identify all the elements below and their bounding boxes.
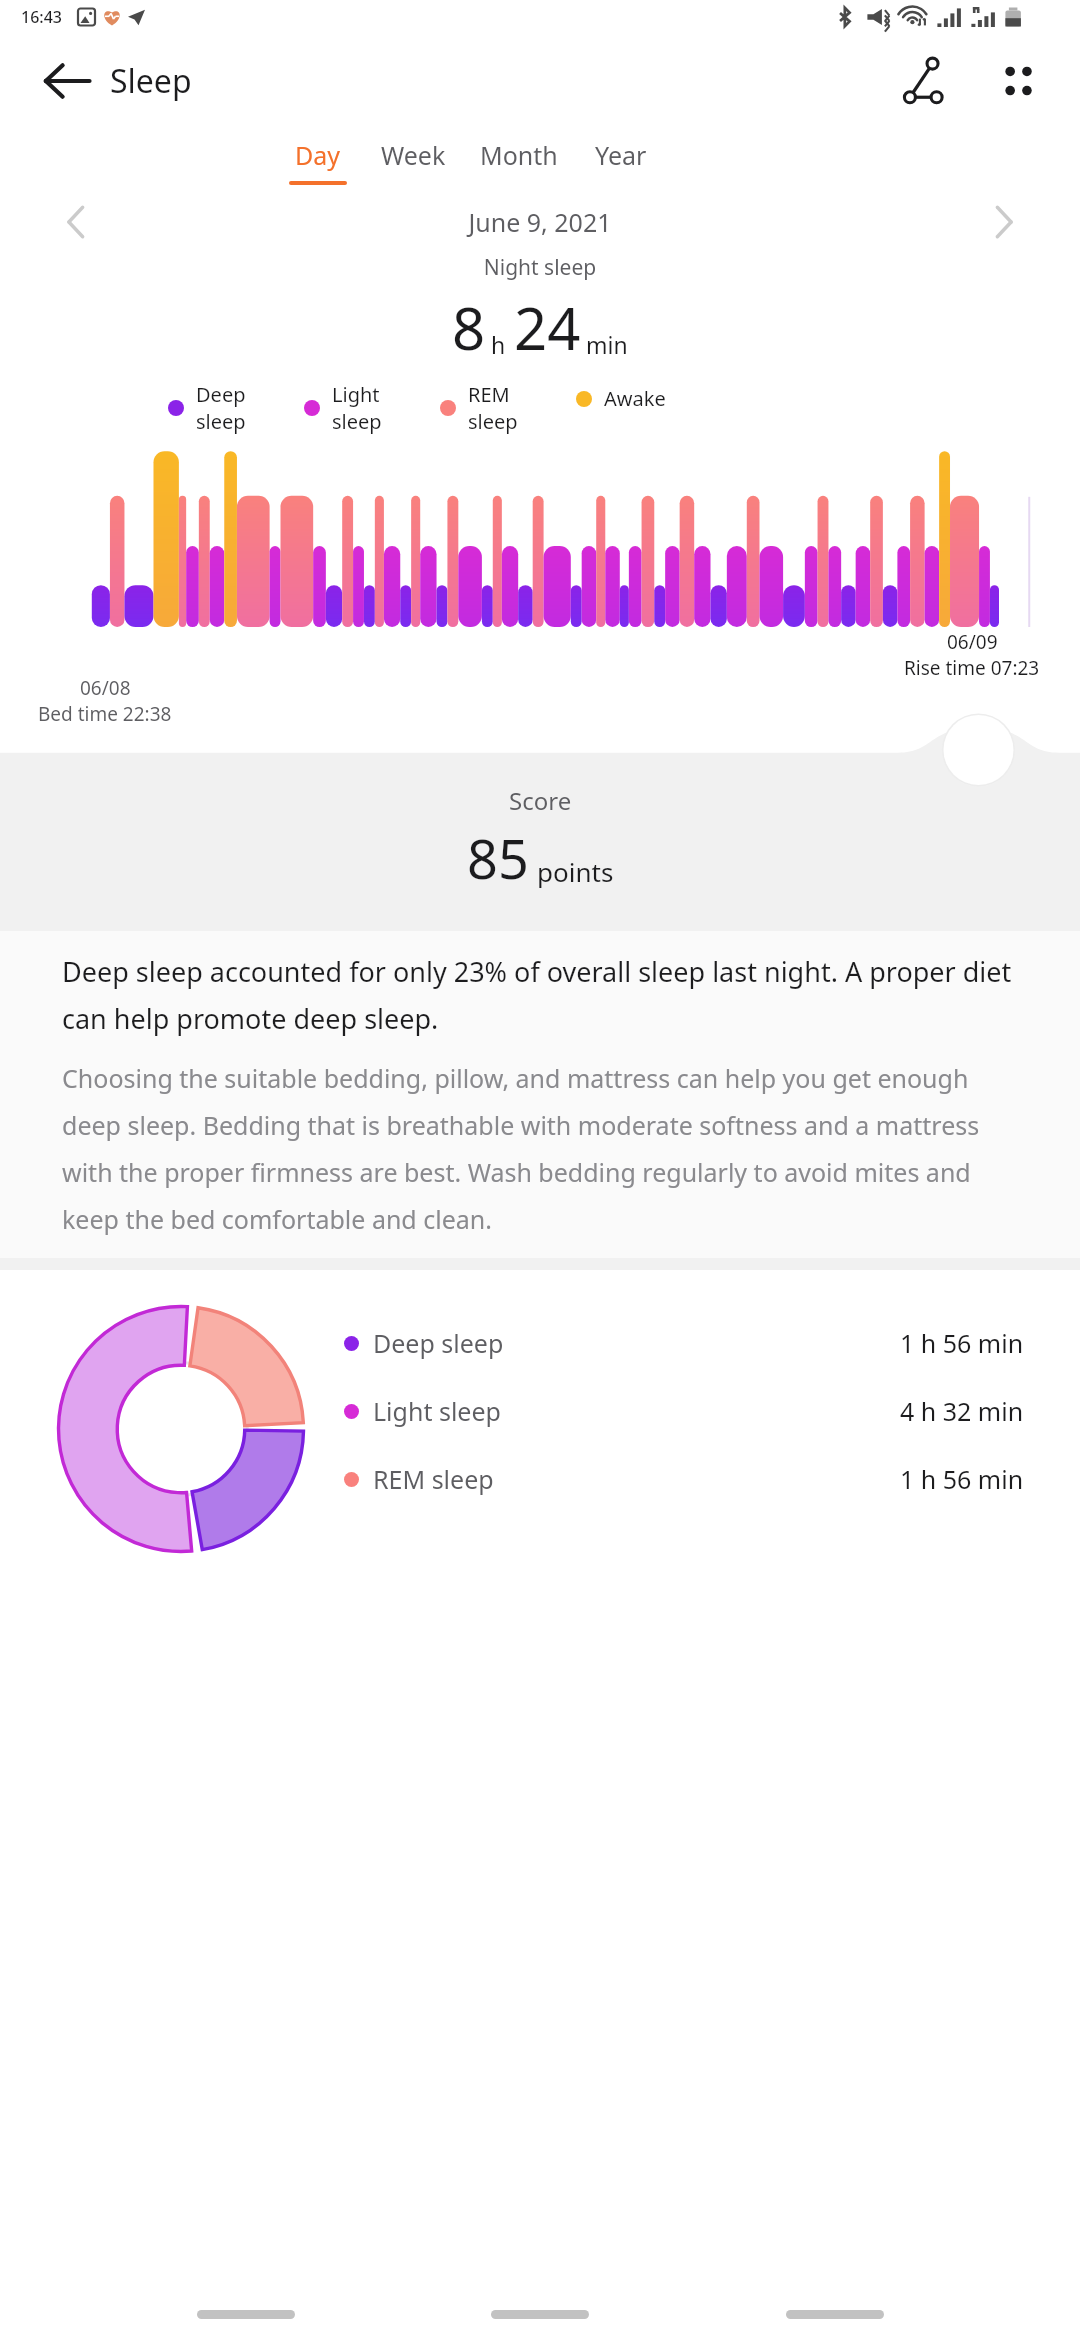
staticText: Light sleep [373, 1394, 501, 1428]
staticText: 06/08 [80, 675, 131, 701]
staticText: min [586, 329, 628, 360]
staticText: 8 [452, 288, 486, 367]
button[interactable]: Year [575, 138, 667, 185]
staticText: Bed time 22:38 [38, 701, 172, 727]
staticText: Week [381, 138, 446, 172]
staticText: Awake [604, 385, 666, 412]
staticText: 1 h 56 min [900, 1462, 1024, 1496]
staticText: sleep [332, 408, 382, 435]
staticText: sleep [468, 408, 518, 435]
staticText: points [537, 854, 614, 889]
staticText: Score [509, 784, 572, 817]
button[interactable]: Month [463, 138, 575, 185]
staticText: 24 [514, 288, 581, 367]
staticText: Deep [196, 381, 246, 408]
staticText: 4 h 32 min [900, 1394, 1024, 1428]
button[interactable]: Navigation [786, 2292, 884, 2336]
staticText: Day [295, 138, 341, 172]
button[interactable]: Deep sleep [344, 1326, 1024, 1360]
button[interactable]: Back [38, 53, 94, 109]
button[interactable]: Day [272, 138, 364, 185]
staticText: Light [332, 381, 380, 408]
staticText: June 9, 2021 [0, 205, 1080, 239]
button[interactable]: Share [896, 52, 954, 110]
staticText: Night sleep [0, 253, 1080, 282]
staticText: 85 [467, 821, 529, 895]
staticText: Sleep [110, 59, 192, 103]
staticText: 16:43 [21, 6, 62, 28]
staticText: REM [468, 381, 510, 408]
staticText: Month [480, 138, 558, 172]
staticText: Choosing the suitable bedding, pillow, a… [62, 1061, 1018, 1236]
staticText: Year [595, 138, 647, 172]
button[interactable]: Week [364, 138, 463, 185]
button[interactable]: REM sleep [344, 1462, 1024, 1496]
staticText: Deep sleep accounted for only 23% of ove… [62, 953, 1018, 1037]
button[interactable]: Navigation [197, 2292, 295, 2336]
button[interactable]: Previous day [56, 199, 102, 245]
button[interactable]: Next day [978, 199, 1024, 245]
button[interactable]: More options [990, 53, 1046, 109]
button[interactable]: Navigation [491, 2292, 589, 2336]
button[interactable]: Light sleep [344, 1394, 1024, 1428]
staticText: sleep [196, 408, 246, 435]
staticText: Rise time 07:23 [904, 655, 1040, 681]
staticText: Deep sleep [373, 1326, 504, 1360]
staticText: h [491, 329, 506, 360]
staticText: REM sleep [373, 1462, 494, 1496]
staticText: 1 h 56 min [900, 1326, 1024, 1360]
staticText: 06/09 [947, 629, 998, 655]
